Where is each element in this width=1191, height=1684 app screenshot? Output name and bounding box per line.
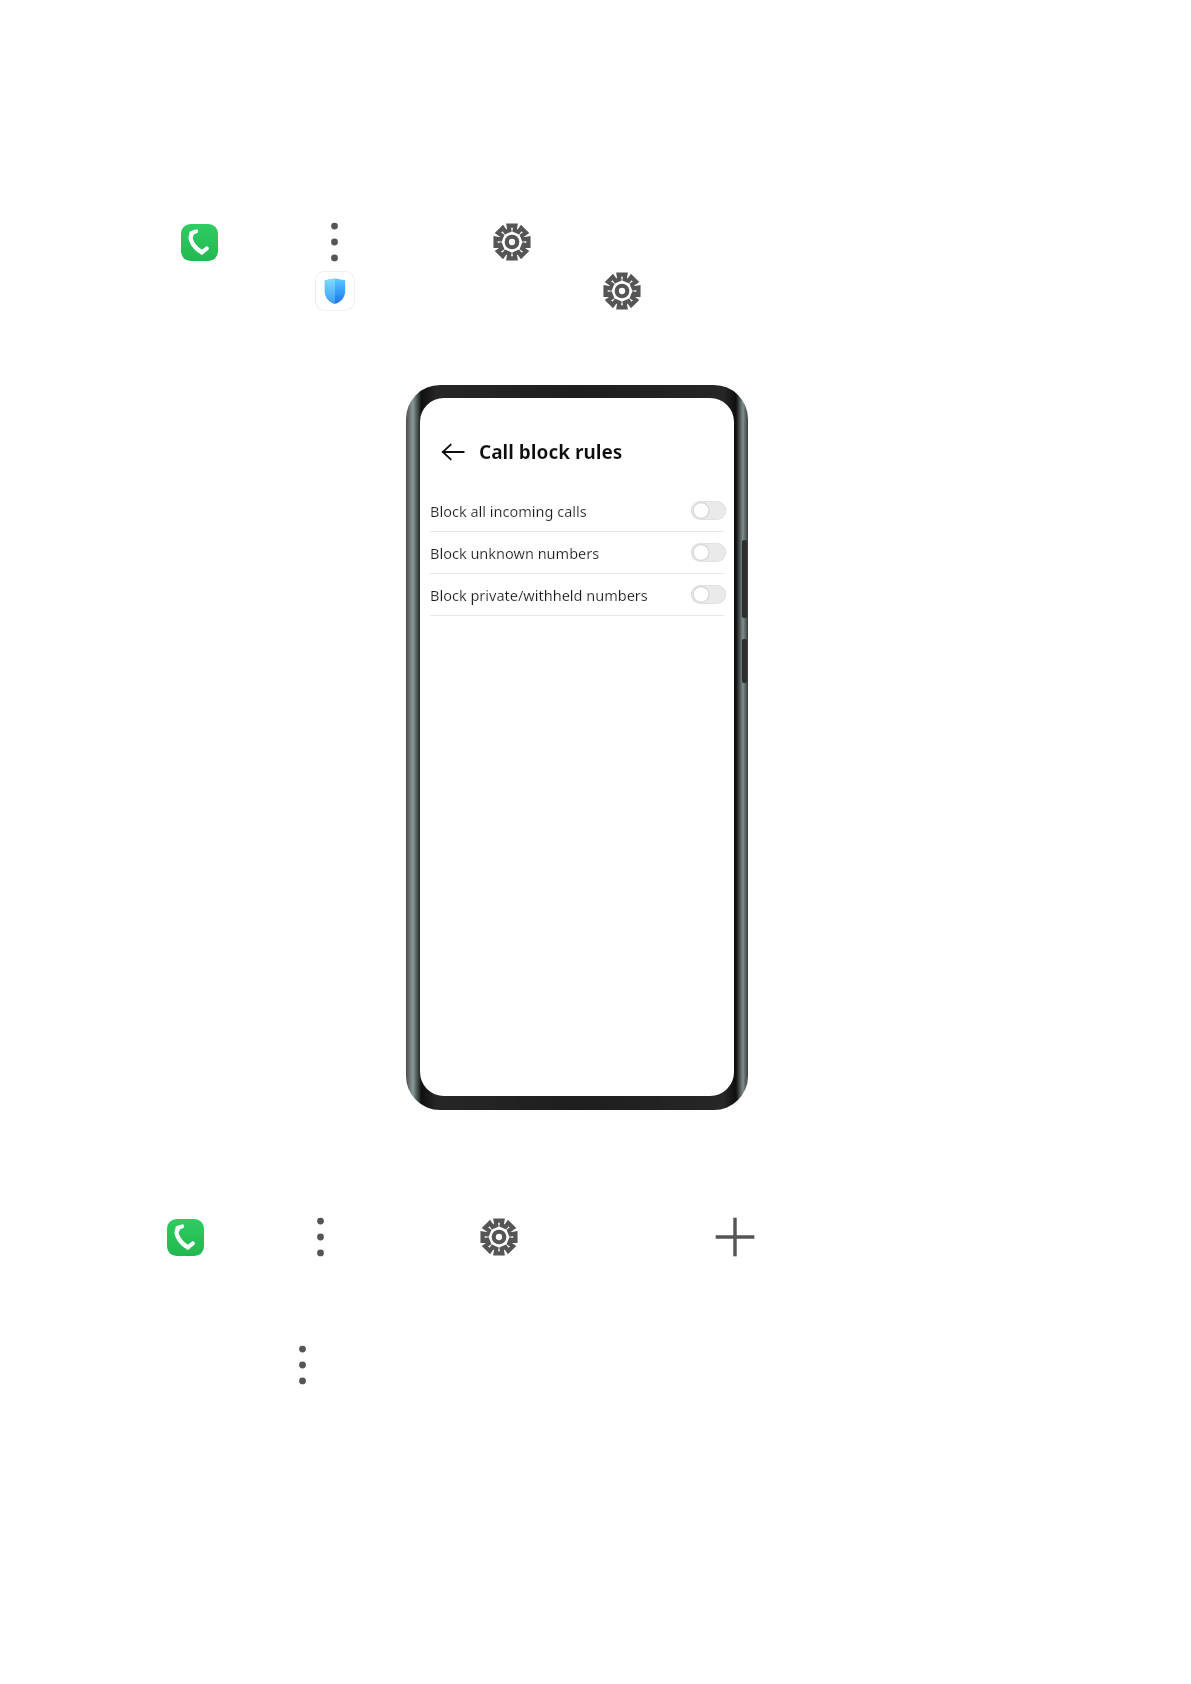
staticText: Block unknown numbers bbox=[430, 543, 691, 563]
staticText: Block all incoming calls bbox=[430, 501, 691, 521]
button[interactable]: Phone app bbox=[181, 224, 218, 261]
button[interactable]: Block private/withheld numbers bbox=[420, 574, 734, 615]
button[interactable]: Back bbox=[438, 437, 468, 467]
button[interactable]: Phone app bbox=[167, 1219, 204, 1256]
button[interactable]: Toggle off bbox=[691, 501, 726, 520]
staticText: Block private/withheld numbers bbox=[430, 585, 691, 605]
button[interactable]: More options bbox=[311, 1216, 330, 1258]
staticText: Call block rules bbox=[479, 439, 623, 465]
button[interactable]: Settings bbox=[478, 1216, 520, 1258]
button[interactable]: Block all incoming calls bbox=[420, 490, 734, 531]
button[interactable]: More options bbox=[325, 221, 344, 263]
button[interactable]: Settings bbox=[491, 221, 533, 263]
button[interactable]: Toggle off bbox=[691, 585, 726, 604]
button[interactable]: More options bbox=[293, 1344, 312, 1386]
button[interactable]: Block unknown numbers bbox=[420, 532, 734, 573]
button[interactable]: Add bbox=[712, 1214, 758, 1260]
button[interactable]: Toggle off bbox=[691, 543, 726, 562]
button[interactable]: Settings bbox=[601, 270, 643, 312]
button[interactable]: Security app bbox=[315, 271, 355, 311]
